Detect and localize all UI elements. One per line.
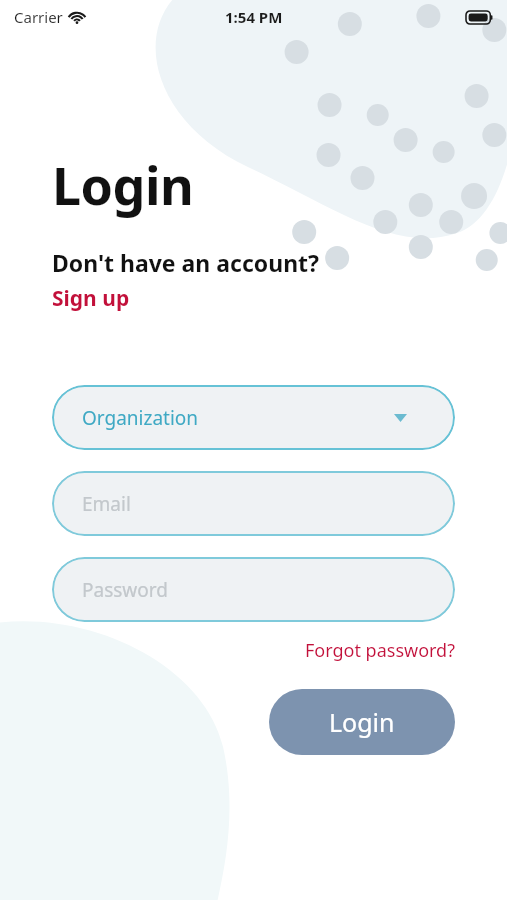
staticText: Don't have an account? [52,247,320,278]
staticText: Sign up [52,284,130,313]
staticText: Carrier [14,7,63,27]
button[interactable]: Login [269,689,455,755]
button[interactable]: Sign up [52,284,130,313]
button[interactable]: Password [52,557,455,622]
button[interactable]: Forgot password? [52,638,455,663]
staticText: Login [52,149,194,220]
staticText: Organization [82,405,199,431]
staticText: 1:54 PM [225,7,283,27]
staticText: Login [329,705,395,739]
staticText: Email [82,491,131,517]
button[interactable]: Email [52,471,455,536]
button[interactable]: Organization [52,385,455,450]
staticText: Password [82,577,168,603]
staticText: Forgot password? [304,638,455,663]
